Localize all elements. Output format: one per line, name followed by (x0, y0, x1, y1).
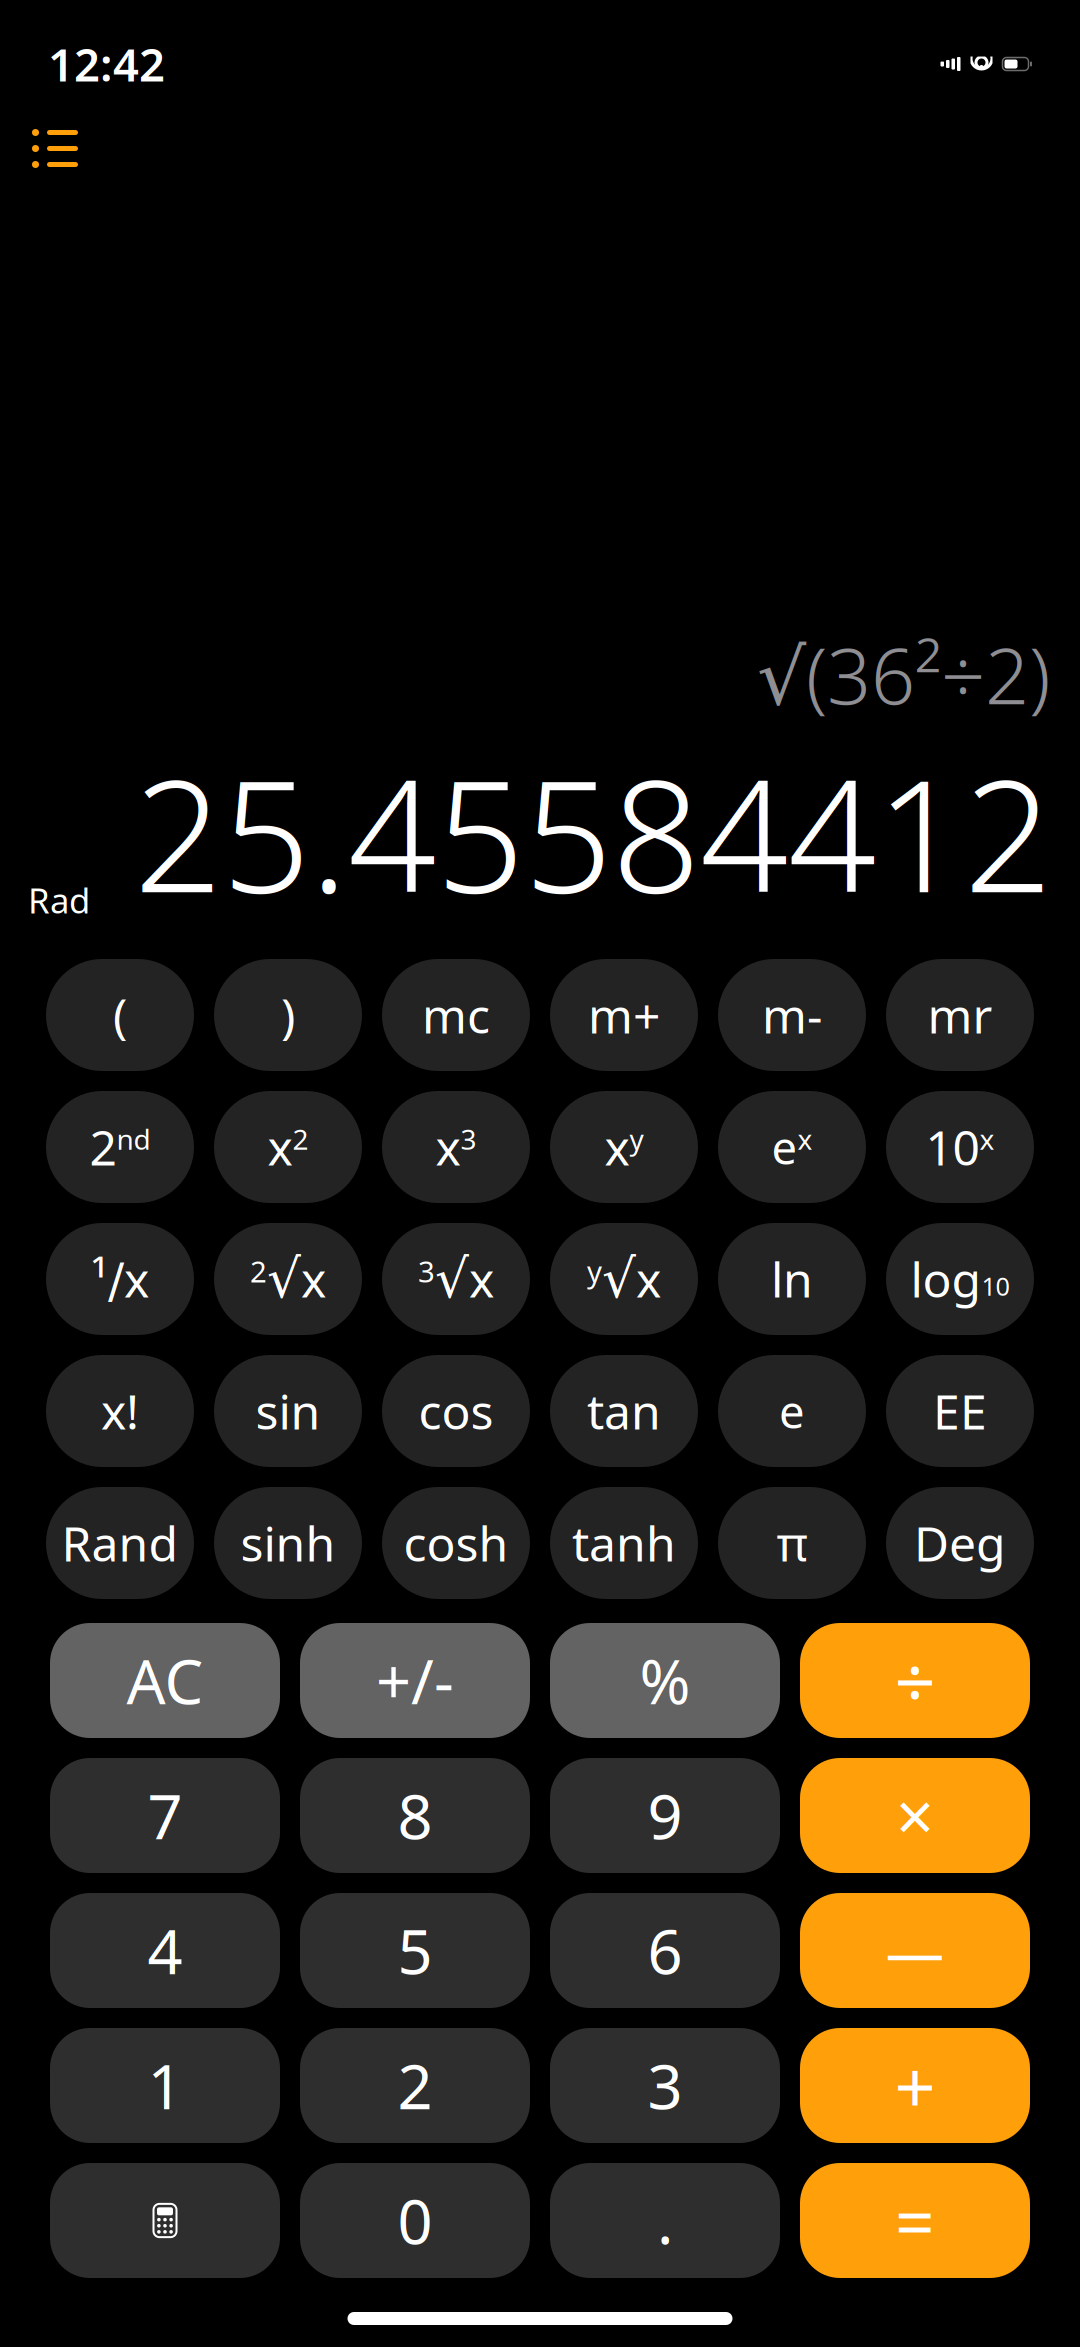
staticText: + (894, 2038, 935, 2133)
staticText: 8 (397, 1775, 432, 1856)
button[interactable]: + (800, 2028, 1030, 2143)
button[interactable]: 3 (550, 2028, 780, 2143)
button[interactable]: sin (214, 1355, 362, 1467)
button[interactable]: ( (46, 959, 194, 1071)
staticText: 2 (292, 1120, 308, 1158)
staticText: 7 (147, 1775, 182, 1856)
button[interactable]: log (886, 1223, 1034, 1335)
button[interactable]: cos (382, 1355, 530, 1467)
staticText: x (301, 1247, 326, 1311)
staticText: nd (116, 1120, 150, 1158)
staticText: sin (255, 1379, 320, 1443)
button[interactable]: EE (886, 1355, 1034, 1467)
staticText: — (885, 1911, 944, 1989)
staticText: x (435, 1115, 460, 1179)
button[interactable]: 9 (550, 1758, 780, 1873)
staticText: x (604, 1115, 629, 1179)
button[interactable]: sinh (214, 1487, 362, 1599)
button[interactable]: tan (550, 1355, 698, 1467)
staticText: × (896, 1771, 934, 1860)
staticText: y (629, 1120, 643, 1158)
button[interactable]: ln (718, 1223, 866, 1335)
staticText: e (779, 1381, 805, 1441)
staticText: π (776, 1511, 807, 1575)
staticText: x (979, 1120, 994, 1158)
staticText: 25.45584412 (134, 730, 1052, 935)
staticText: e (771, 1117, 797, 1177)
button[interactable]: Basic calculator (50, 2163, 280, 2278)
staticText: Rad (28, 877, 90, 923)
staticText: Rand (61, 1511, 178, 1575)
button[interactable]: +/- (300, 1623, 530, 1738)
staticText: √ (267, 1249, 301, 1309)
staticText: = (895, 2174, 935, 2267)
button[interactable]: π (718, 1487, 866, 1599)
staticText: ( (113, 983, 127, 1047)
button[interactable]: 3 (382, 1223, 530, 1335)
staticText: log (910, 1247, 981, 1311)
button[interactable]: 2 (46, 1091, 194, 1203)
staticText: 4 (147, 1910, 182, 1991)
staticText: x! (101, 1379, 139, 1443)
button[interactable]: 0 (300, 2163, 530, 2278)
staticText: mr (927, 983, 992, 1047)
staticText: 1 (147, 2045, 182, 2126)
button[interactable]: 8 (300, 1758, 530, 1873)
staticText: 6 (647, 1910, 682, 1991)
button[interactable]: mr (886, 959, 1034, 1071)
staticText: ) (281, 983, 295, 1047)
staticText: Deg (914, 1511, 1006, 1575)
button[interactable]: = (800, 2163, 1030, 2278)
button[interactable]: x (214, 1091, 362, 1203)
button[interactable]: 4 (50, 1893, 280, 2008)
button[interactable]: 10 (886, 1091, 1034, 1203)
button[interactable]: m- (718, 959, 866, 1071)
staticText: 2 (397, 2045, 432, 2126)
staticText: mc (422, 983, 490, 1047)
staticText: tan (587, 1379, 661, 1443)
staticText: 9 (647, 1775, 682, 1856)
button[interactable]: e (718, 1091, 866, 1203)
button[interactable]: % (550, 1623, 780, 1738)
button[interactable]: × (800, 1758, 1030, 1873)
staticText: 3 (418, 1251, 435, 1290)
button[interactable]: Rand (46, 1487, 194, 1599)
staticText: x (469, 1247, 494, 1311)
button[interactable]: x (550, 1091, 698, 1203)
button[interactable]: ) (214, 959, 362, 1071)
button[interactable]: cosh (382, 1487, 530, 1599)
button[interactable]: — (800, 1893, 1030, 2008)
button[interactable]: e (718, 1355, 866, 1467)
button[interactable]: m+ (550, 959, 698, 1071)
button[interactable]: . (550, 2163, 780, 2278)
button[interactable]: History (18, 116, 92, 181)
staticText: x (797, 1120, 812, 1158)
staticText: 10 (925, 1115, 979, 1179)
button[interactable]: x (382, 1091, 530, 1203)
button[interactable]: mc (382, 959, 530, 1071)
button[interactable]: 5 (300, 1893, 530, 2008)
staticText: √ (435, 1249, 469, 1309)
staticText: y (587, 1251, 602, 1290)
button[interactable]: 6 (550, 1893, 780, 2008)
staticText: tanh (572, 1511, 676, 1575)
staticText: 2 (89, 1115, 116, 1179)
button[interactable]: ÷ (800, 1623, 1030, 1738)
button[interactable]: Deg (886, 1487, 1034, 1599)
staticText: m- (762, 983, 822, 1047)
staticText: +/- (376, 1640, 454, 1721)
button[interactable]: ¹∕x (46, 1223, 194, 1335)
button[interactable]: y (550, 1223, 698, 1335)
staticText: x (267, 1115, 292, 1179)
button[interactable]: tanh (550, 1487, 698, 1599)
button[interactable]: 2 (300, 2028, 530, 2143)
button[interactable]: 1 (50, 2028, 280, 2143)
staticText: 12:42 (48, 34, 165, 94)
staticText: x (636, 1247, 661, 1311)
button[interactable]: x! (46, 1355, 194, 1467)
button[interactable]: AC (50, 1623, 280, 1738)
staticText: m+ (588, 983, 660, 1047)
button[interactable]: 2 (214, 1223, 362, 1335)
staticText: 10 (981, 1269, 1009, 1303)
button[interactable]: 7 (50, 1758, 280, 1873)
